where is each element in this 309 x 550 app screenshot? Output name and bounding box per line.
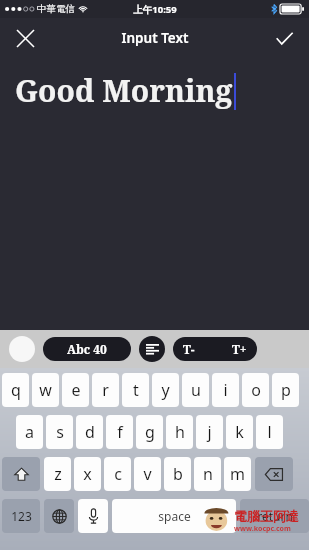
button[interactable]: p <box>272 373 299 407</box>
button[interactable]: l <box>256 415 283 449</box>
button[interactable]: m <box>224 457 251 491</box>
button[interactable]: Good Morning <box>0 58 309 330</box>
staticText: www.kocpc.com <box>234 524 291 534</box>
button[interactable]: i <box>212 373 239 407</box>
staticText: u <box>191 379 201 401</box>
staticText: p <box>281 379 291 401</box>
button[interactable]: c <box>104 457 131 491</box>
button[interactable]: 123 <box>2 499 40 533</box>
staticText: 中華電信 <box>37 3 75 15</box>
button[interactable]: d <box>76 415 103 449</box>
button[interactable]: Switch keyboard <box>44 499 74 533</box>
staticText: k <box>235 421 244 443</box>
staticText: T- <box>183 341 195 357</box>
button[interactable]: space <box>112 499 236 533</box>
staticText: n <box>203 463 213 485</box>
button[interactable]: w <box>32 373 59 407</box>
staticText: b <box>173 463 183 485</box>
staticText: a <box>25 421 34 443</box>
button[interactable]: q <box>2 373 29 407</box>
button[interactable]: b <box>164 457 191 491</box>
button[interactable]: return <box>240 499 309 533</box>
staticText: d <box>85 421 95 443</box>
button[interactable]: s <box>46 415 73 449</box>
button[interactable]: z <box>44 457 71 491</box>
button[interactable]: Dictation <box>78 499 108 533</box>
staticText: T+ <box>232 341 247 357</box>
button[interactable]: u <box>182 373 209 407</box>
button[interactable]: x <box>74 457 101 491</box>
button[interactable]: t <box>122 373 149 407</box>
staticText: g <box>145 421 155 443</box>
button[interactable]: k <box>226 415 253 449</box>
button[interactable]: f <box>106 415 133 449</box>
staticText: m <box>230 463 245 485</box>
staticText: l <box>267 421 272 443</box>
button[interactable]: e <box>62 373 89 407</box>
button[interactable]: Done <box>267 21 301 55</box>
staticText: Abc 40 <box>67 341 107 357</box>
button[interactable]: Align <box>139 336 165 362</box>
staticText: 電腦王阿達 <box>234 508 299 524</box>
staticText: x <box>83 463 92 485</box>
button[interactable]: g <box>136 415 163 449</box>
staticText: v <box>143 463 152 485</box>
button[interactable]: h <box>166 415 193 449</box>
staticText: e <box>71 379 81 401</box>
staticText: s <box>56 421 64 443</box>
button[interactable]: Abc 40 <box>43 337 131 361</box>
staticText: f <box>117 421 123 443</box>
staticText: 123 <box>11 508 32 524</box>
staticText: Good Morning <box>15 70 233 111</box>
staticText: z <box>54 463 62 485</box>
staticText: w <box>39 379 52 401</box>
button[interactable]: Text color <box>9 336 35 362</box>
staticText: y <box>161 379 170 401</box>
button[interactable]: v <box>134 457 161 491</box>
staticText: space <box>158 508 191 524</box>
staticText: o <box>251 379 261 401</box>
button[interactable]: T- <box>173 337 257 361</box>
button[interactable]: y <box>152 373 179 407</box>
staticText: j <box>207 421 212 443</box>
button[interactable]: Shift <box>2 457 40 491</box>
staticText: 上午10:59 <box>133 3 177 16</box>
button[interactable]: n <box>194 457 221 491</box>
staticText: c <box>114 463 122 485</box>
button[interactable]: j <box>196 415 223 449</box>
staticText: q <box>11 379 21 401</box>
staticText: i <box>223 379 228 401</box>
button[interactable]: a <box>16 415 43 449</box>
staticText: Input Text <box>121 29 189 47</box>
button[interactable]: Close <box>8 21 42 55</box>
button[interactable]: r <box>92 373 119 407</box>
button[interactable]: o <box>242 373 269 407</box>
staticText: h <box>175 421 185 443</box>
button[interactable]: Backspace <box>255 457 293 491</box>
staticText: return <box>257 508 293 524</box>
staticText: r <box>102 379 109 401</box>
staticText: t <box>133 379 139 401</box>
